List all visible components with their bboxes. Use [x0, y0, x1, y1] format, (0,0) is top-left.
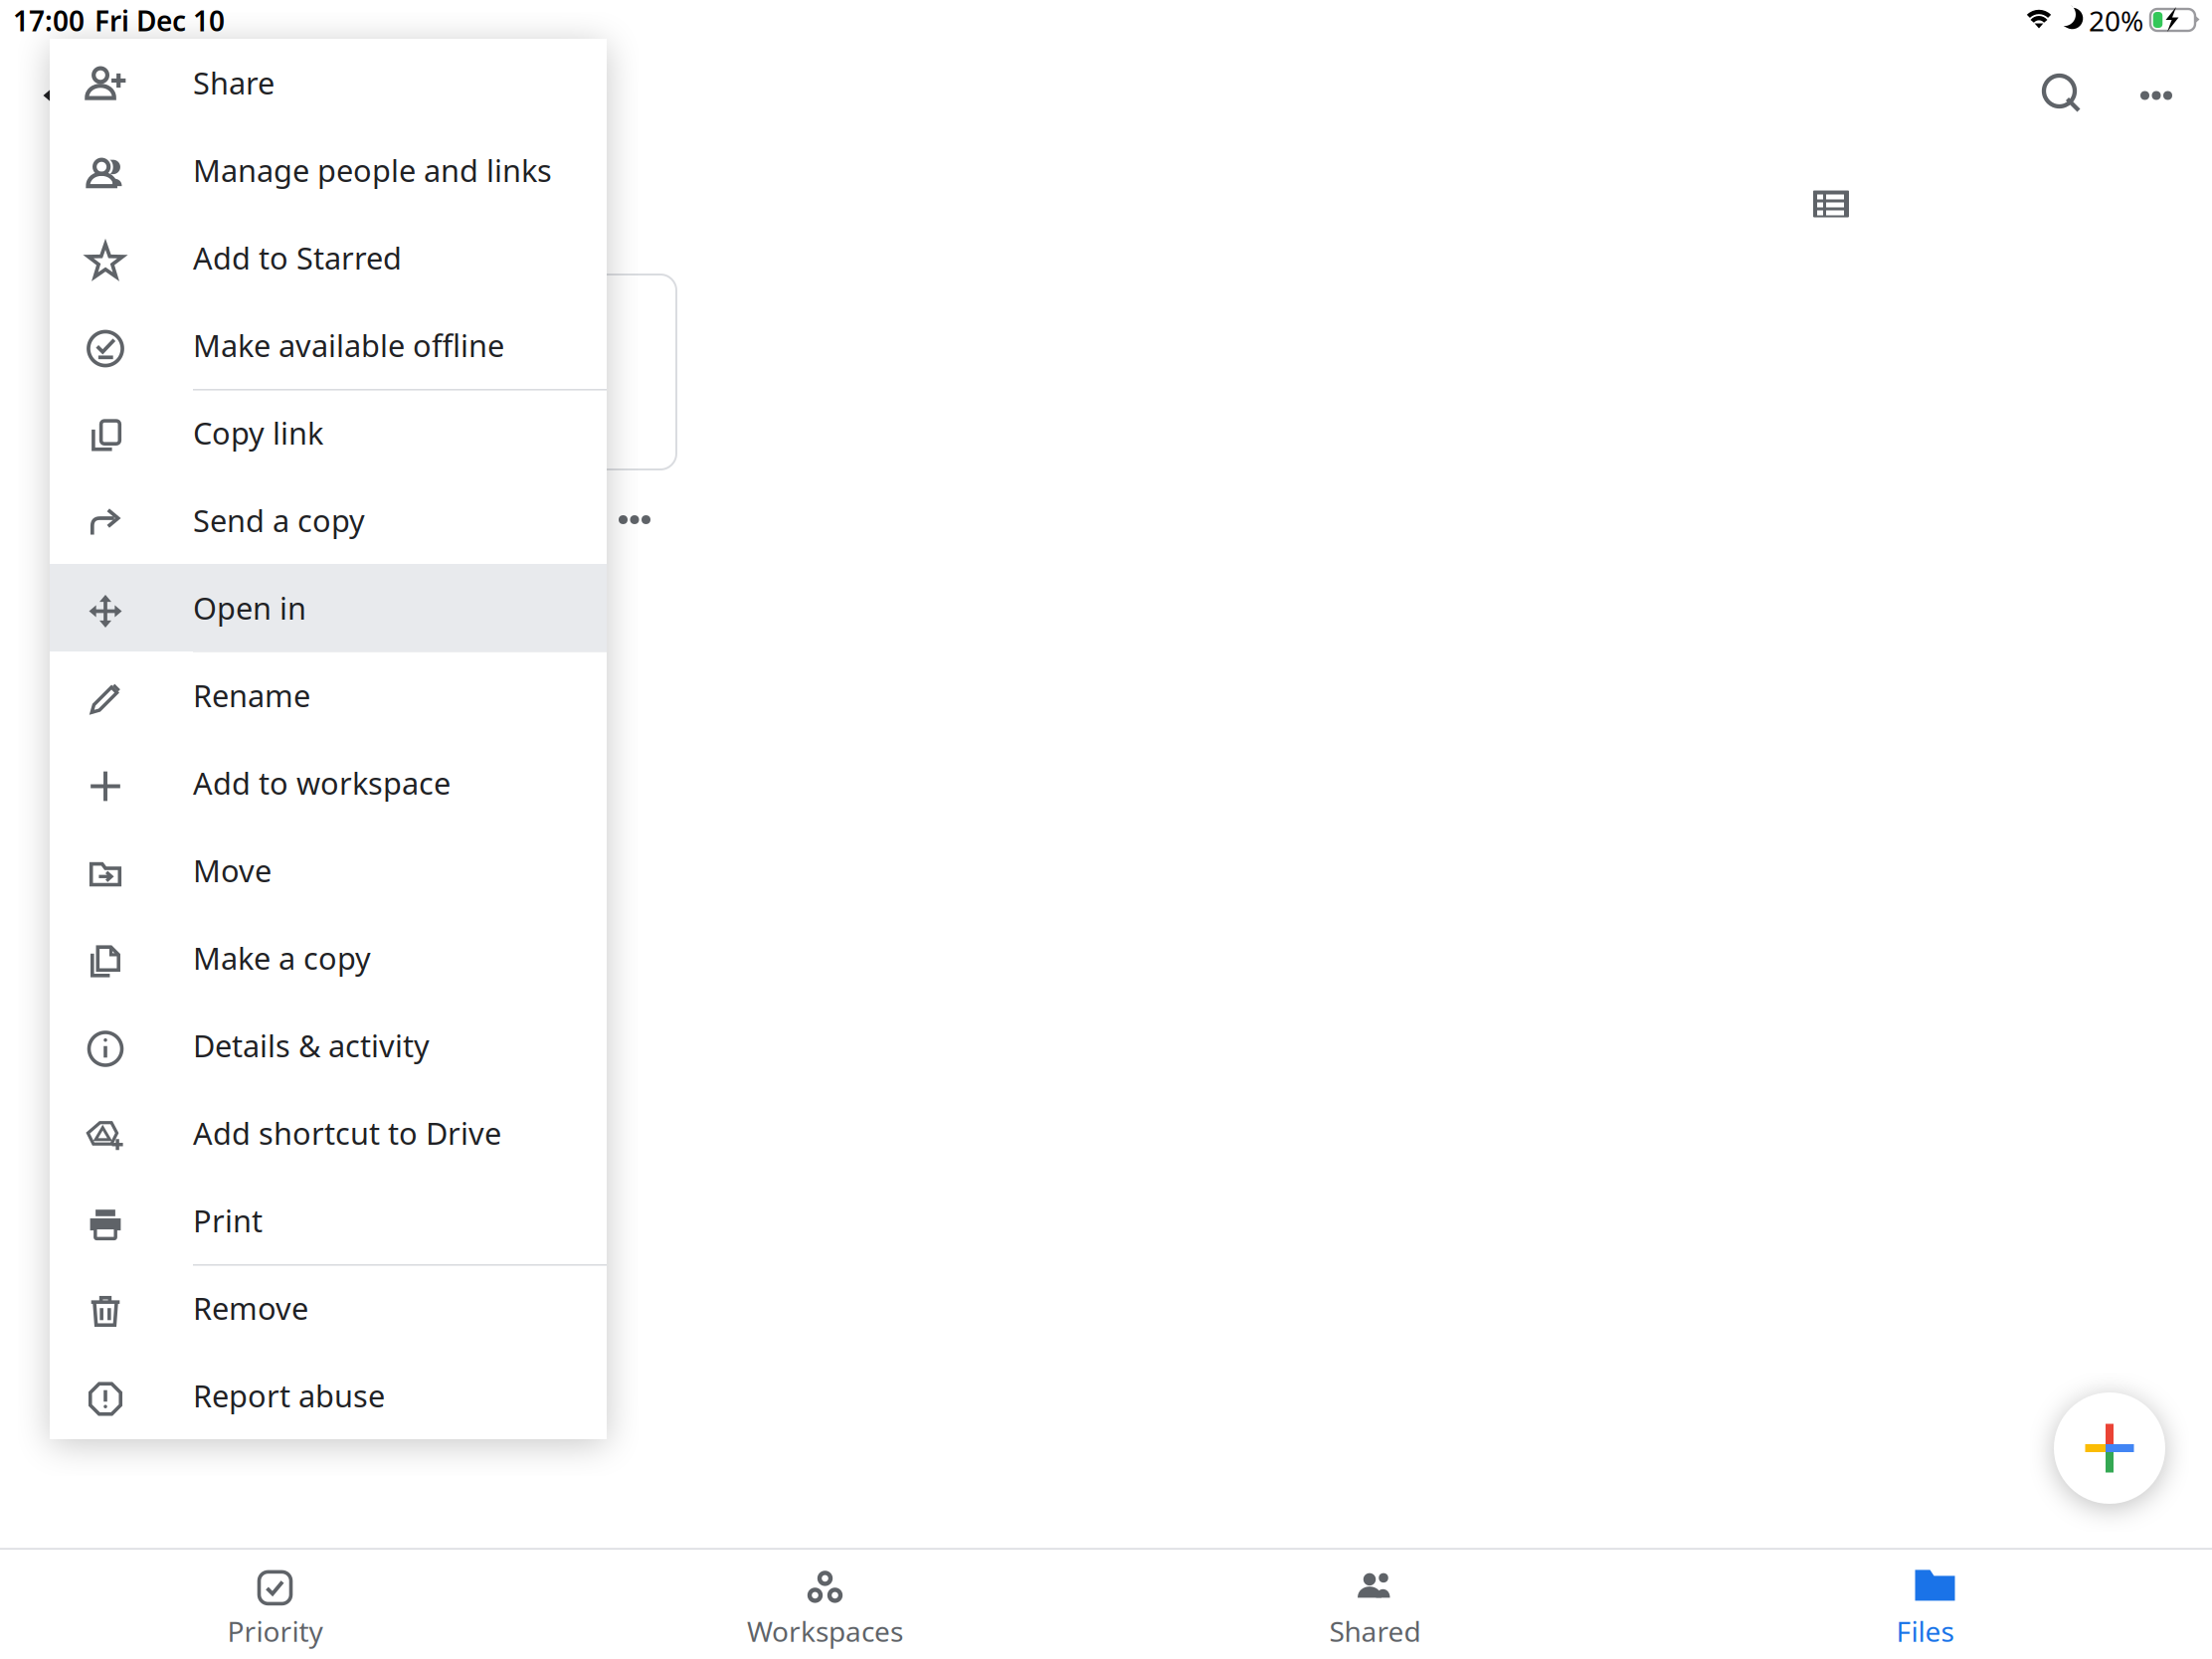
button[interactable]: Create: [2040, 1379, 2179, 1518]
staticText: Files: [1896, 1613, 1954, 1650]
staticText: 20%: [2089, 2, 2143, 39]
button[interactable]: Add to Starred: [50, 214, 607, 301]
staticText: Manage people and links: [193, 150, 552, 190]
button[interactable]: More options: [2117, 56, 2196, 135]
button[interactable]: Manage people and links: [50, 126, 607, 214]
button[interactable]: Add shortcut to Drive: [50, 1089, 607, 1177]
button[interactable]: Make available offline: [50, 301, 607, 389]
button[interactable]: Add to workspace: [50, 739, 607, 827]
staticText: Print: [193, 1200, 263, 1241]
staticText: Open in: [193, 587, 306, 628]
staticText: Report abuse: [193, 1375, 385, 1416]
staticText: Add shortcut to Drive: [193, 1113, 501, 1153]
button[interactable]: Remove: [50, 1264, 607, 1352]
staticText: Shared: [1329, 1613, 1421, 1650]
button[interactable]: Move: [50, 827, 607, 914]
button[interactable]: Print: [50, 1177, 607, 1264]
staticText: Share: [193, 62, 275, 103]
button[interactable]: Rename: [50, 651, 607, 739]
button[interactable]: Workspaces: [550, 1544, 1100, 1659]
staticText: Remove: [193, 1288, 308, 1328]
staticText: Details & activity: [193, 1025, 430, 1066]
staticText: Make available offline: [193, 325, 504, 365]
staticText: Send a copy: [193, 500, 365, 540]
button[interactable]: Copy link: [50, 389, 607, 476]
staticText: Workspaces: [747, 1613, 903, 1650]
staticText: Copy link: [193, 412, 323, 453]
button[interactable]: Details & activity: [50, 1002, 607, 1089]
staticText: Fri Dec 10: [94, 2, 225, 39]
button[interactable]: Priority: [0, 1544, 550, 1659]
staticText: Priority: [227, 1613, 323, 1650]
button[interactable]: Send a copy: [50, 476, 607, 564]
button[interactable]: Files: [1650, 1544, 2200, 1659]
button[interactable]: Switch to list view: [1796, 169, 1866, 239]
button[interactable]: Share: [50, 39, 607, 126]
staticText: Move: [193, 850, 272, 890]
staticText: Make a copy: [193, 938, 371, 978]
button[interactable]: Shared: [1100, 1544, 1650, 1659]
staticText: Add to workspace: [193, 762, 451, 803]
button[interactable]: Report abuse: [50, 1352, 607, 1439]
staticText: 17:00: [13, 2, 85, 39]
staticText: Add to Starred: [193, 237, 402, 278]
button[interactable]: Make a copy: [50, 914, 607, 1002]
button[interactable]: Search: [2024, 56, 2104, 135]
staticText: Rename: [193, 675, 310, 715]
button[interactable]: Open in: [50, 564, 607, 651]
